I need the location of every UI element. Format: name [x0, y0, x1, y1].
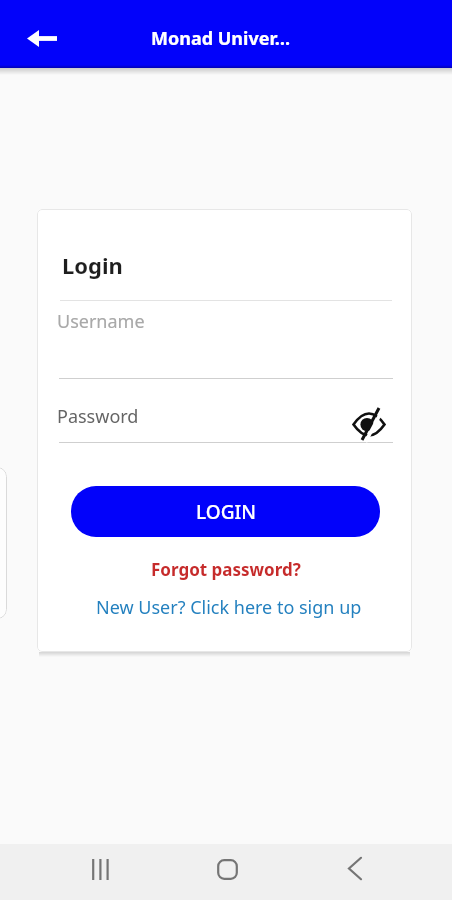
staticText: Forgot password?	[151, 558, 301, 581]
staticText: Password	[57, 404, 139, 429]
staticText: Username	[57, 309, 145, 334]
staticText: Monad Univer…	[151, 26, 291, 51]
button[interactable]: Password	[57, 403, 393, 442]
staticText: New User? Click here to sign up	[96, 595, 362, 620]
button[interactable]: Forgot password?	[131, 555, 321, 583]
button[interactable]: Username	[57, 308, 393, 378]
button[interactable]	[352, 407, 388, 441]
button[interactable]: LOGIN	[71, 486, 380, 537]
staticText: LOGIN	[196, 499, 256, 525]
button[interactable]	[77, 845, 125, 893]
staticText: Login	[62, 250, 123, 280]
button[interactable]	[330, 844, 378, 892]
button[interactable]	[14, 20, 70, 56]
button[interactable]	[203, 845, 251, 893]
button[interactable]: New User? Click here to sign up	[89, 593, 369, 621]
